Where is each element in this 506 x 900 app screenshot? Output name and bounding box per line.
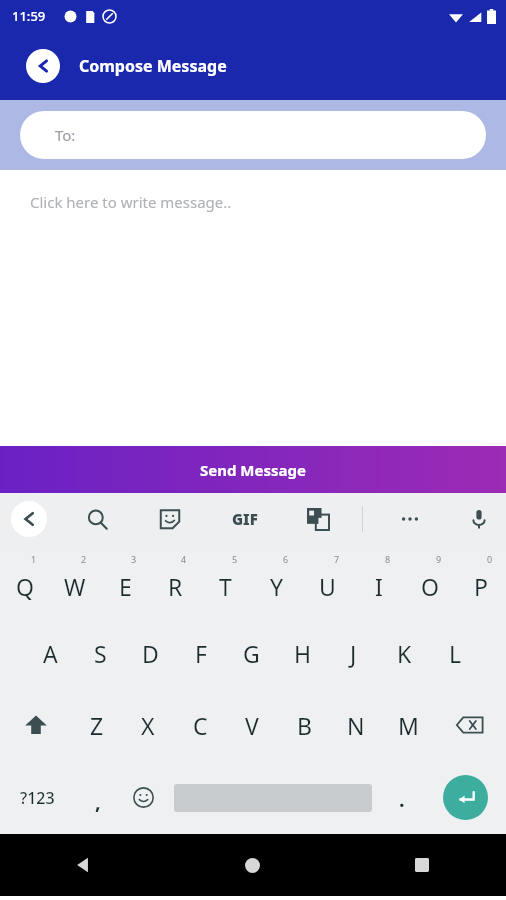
button[interactable]: , xyxy=(75,761,120,834)
button[interactable]: 6 xyxy=(251,545,302,617)
button[interactable]: 9 xyxy=(404,545,455,617)
button[interactable]: Translate xyxy=(300,501,336,537)
button[interactable]: F xyxy=(175,617,226,689)
staticText: 7 xyxy=(334,553,340,565)
staticText: M xyxy=(398,710,419,741)
staticText: P xyxy=(474,571,488,602)
button[interactable]: 0 xyxy=(455,545,506,617)
button[interactable]: Enter xyxy=(443,775,488,820)
button[interactable]: Search xyxy=(79,501,115,537)
staticText: ?123 xyxy=(20,787,55,809)
button[interactable]: Click here to write message.. xyxy=(0,170,506,446)
staticText: 3 xyxy=(131,553,137,565)
staticText: Q xyxy=(16,571,34,602)
button[interactable]: S xyxy=(75,617,125,689)
staticText: 9 xyxy=(436,553,442,565)
staticText: , xyxy=(95,788,101,815)
button[interactable]: ?123 xyxy=(0,761,75,834)
button[interactable]: B xyxy=(278,689,330,761)
staticText: J xyxy=(350,638,357,669)
staticText: T xyxy=(219,571,232,602)
staticText: 1 xyxy=(31,553,37,565)
button[interactable]: GIF xyxy=(222,496,268,542)
button[interactable]: More options xyxy=(390,499,430,539)
staticText: U xyxy=(319,571,336,602)
button[interactable]: G xyxy=(226,617,277,689)
button[interactable]: A xyxy=(25,617,75,689)
staticText: W xyxy=(64,571,86,602)
button[interactable]: Send Message xyxy=(0,446,506,493)
staticText: 2 xyxy=(81,553,87,565)
staticText: F xyxy=(195,638,207,669)
button[interactable]: 2 xyxy=(50,545,100,617)
staticText: 0 xyxy=(487,553,493,565)
button[interactable]: 5 xyxy=(200,545,251,617)
staticText: K xyxy=(397,638,412,669)
staticText: O xyxy=(421,571,439,602)
button[interactable]: Shift xyxy=(0,689,71,761)
button[interactable]: Back xyxy=(11,501,47,537)
button[interactable]: N xyxy=(330,689,382,761)
button[interactable]: J xyxy=(328,617,379,689)
staticText: Compose Message xyxy=(79,55,227,77)
staticText: 6 xyxy=(283,553,289,565)
button[interactable]: Emoji xyxy=(120,761,166,834)
staticText: To: xyxy=(55,125,76,145)
button[interactable]: L xyxy=(430,617,481,689)
staticText: 4 xyxy=(181,553,187,565)
button[interactable]: Stickers xyxy=(152,501,188,537)
button[interactable]: 4 xyxy=(150,545,200,617)
staticText: N xyxy=(347,710,365,741)
button[interactable]: C xyxy=(174,689,226,761)
button[interactable]: V xyxy=(226,689,278,761)
staticText: E xyxy=(119,571,132,602)
staticText: 11:59 xyxy=(12,7,46,25)
staticText: A xyxy=(43,638,58,669)
staticText: . xyxy=(399,786,405,813)
button[interactable]: Back xyxy=(0,834,168,896)
staticText: Click here to write message.. xyxy=(30,192,232,212)
button[interactable]: 3 xyxy=(100,545,150,617)
button[interactable]: M xyxy=(382,689,434,761)
staticText: GIF xyxy=(232,509,258,529)
staticText: I xyxy=(375,571,383,602)
button[interactable]: . xyxy=(379,761,425,834)
staticText: Z xyxy=(90,710,104,741)
staticText: X xyxy=(141,710,155,741)
staticText: Y xyxy=(270,571,284,602)
button[interactable]: Backspace xyxy=(434,689,506,761)
button[interactable]: H xyxy=(277,617,328,689)
staticText: R xyxy=(168,571,183,602)
button[interactable]: X xyxy=(122,689,174,761)
staticText: G xyxy=(243,638,260,669)
staticText: B xyxy=(297,710,312,741)
button[interactable]: To: xyxy=(20,111,486,159)
button[interactable]: Space xyxy=(166,761,379,834)
staticText: 5 xyxy=(232,553,238,565)
button[interactable]: D xyxy=(125,617,175,689)
staticText: L xyxy=(449,638,462,669)
staticText: 8 xyxy=(385,553,391,565)
staticText: C xyxy=(193,710,208,741)
button[interactable]: 7 xyxy=(302,545,353,617)
button[interactable]: Home xyxy=(168,834,337,896)
staticText: Send Message xyxy=(200,460,306,480)
button[interactable]: 1 xyxy=(0,545,50,617)
staticText: S xyxy=(94,638,107,669)
button[interactable]: Voice input xyxy=(460,500,498,538)
staticText: D xyxy=(142,638,159,669)
button[interactable]: 8 xyxy=(353,545,404,617)
staticText: H xyxy=(294,638,312,669)
staticText: V xyxy=(245,710,259,741)
button[interactable]: Back xyxy=(26,49,60,83)
button[interactable]: Recents xyxy=(337,834,506,896)
button[interactable]: K xyxy=(379,617,430,689)
button[interactable]: Z xyxy=(71,689,122,761)
